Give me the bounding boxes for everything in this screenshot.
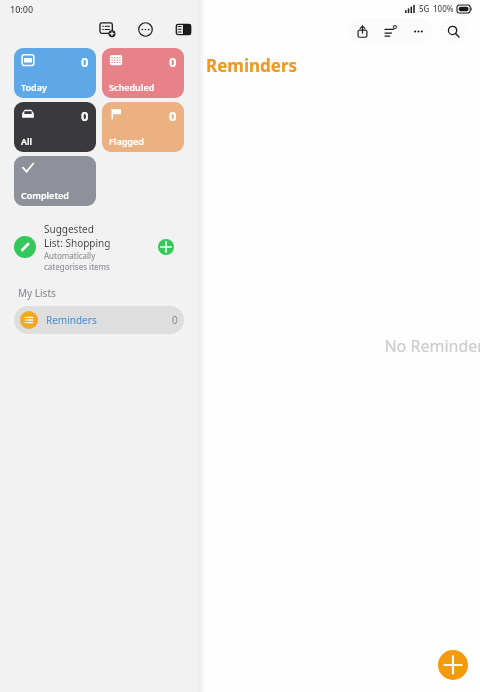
button[interactable]: 0 bbox=[102, 48, 184, 98]
staticText: 10:00 bbox=[10, 3, 34, 15]
button[interactable]: Add suggested list bbox=[158, 239, 174, 255]
button[interactable]: Toggle sidebar bbox=[172, 18, 194, 40]
staticText: Scheduled bbox=[109, 81, 155, 93]
staticText: 100% bbox=[433, 3, 454, 14]
staticText: 0 bbox=[172, 313, 178, 327]
staticText: Today bbox=[21, 81, 47, 93]
staticText: 0 bbox=[81, 53, 89, 71]
staticText: Flagged bbox=[109, 135, 144, 147]
button[interactable]: More bbox=[134, 18, 156, 40]
button[interactable]: Completed bbox=[14, 156, 96, 206]
staticText: 5G bbox=[419, 3, 430, 14]
button[interactable]: Suggested bbox=[14, 222, 184, 272]
staticText: My Lists bbox=[18, 286, 56, 300]
staticText: categorises items bbox=[44, 261, 110, 272]
button[interactable]: Reminders bbox=[14, 306, 184, 334]
button[interactable]: 0 bbox=[14, 48, 96, 98]
button[interactable]: More options bbox=[404, 18, 432, 44]
staticText: Completed bbox=[21, 189, 69, 201]
button[interactable]: 0 bbox=[102, 102, 184, 152]
staticText: Automatically bbox=[44, 250, 96, 261]
staticText: Reminders bbox=[46, 313, 97, 327]
button[interactable]: Search bbox=[440, 18, 466, 44]
staticText: List: Shopping bbox=[44, 236, 111, 250]
staticText: Suggested bbox=[44, 222, 94, 236]
staticText: 0 bbox=[169, 107, 177, 125]
button[interactable]: New Reminder bbox=[438, 650, 468, 680]
staticText: 0 bbox=[169, 53, 177, 71]
staticText: Reminders bbox=[206, 54, 298, 77]
button[interactable]: New list bbox=[96, 18, 118, 40]
staticText: All bbox=[21, 135, 33, 147]
staticText: No Reminders bbox=[384, 335, 480, 357]
button[interactable]: 0 bbox=[14, 102, 96, 152]
button[interactable]: Share bbox=[348, 18, 376, 44]
button[interactable]: Sort and filter bbox=[376, 18, 404, 44]
staticText: 0 bbox=[81, 107, 89, 125]
